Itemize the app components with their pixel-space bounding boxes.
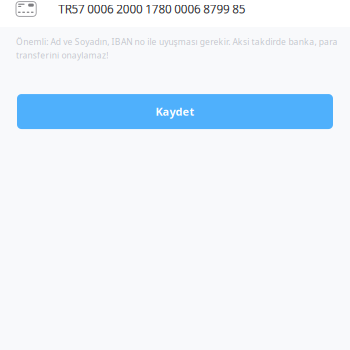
staticText: TR57 0006 2000 1780 0006 8799 85 xyxy=(58,1,246,17)
staticText: Kaydet xyxy=(155,104,194,119)
staticText: Önemli: Ad ve Soyadın, IBAN no ile uyuşm… xyxy=(16,36,337,61)
button[interactable]: Kaydet xyxy=(17,94,333,129)
button[interactable]: TR57 0006 2000 1780 0006 8799 85 xyxy=(0,0,350,27)
